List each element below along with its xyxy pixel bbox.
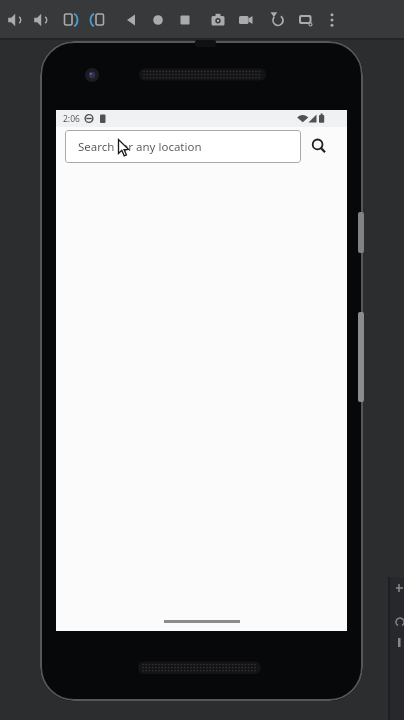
button[interactable] [28,8,52,32]
button[interactable] [266,8,290,32]
staticText: 2:06 [63,113,80,125]
button[interactable] [234,8,258,32]
button[interactable] [173,8,197,32]
button[interactable] [2,8,26,32]
button[interactable] [59,8,83,32]
button[interactable] [146,8,170,32]
button[interactable] [206,8,230,32]
button[interactable] [294,8,318,32]
button[interactable] [309,136,329,156]
button[interactable]: Search for any location [65,130,301,163]
staticText: Search for any location [78,139,202,155]
button[interactable] [120,8,144,32]
button[interactable] [85,8,109,32]
button[interactable] [320,8,344,32]
